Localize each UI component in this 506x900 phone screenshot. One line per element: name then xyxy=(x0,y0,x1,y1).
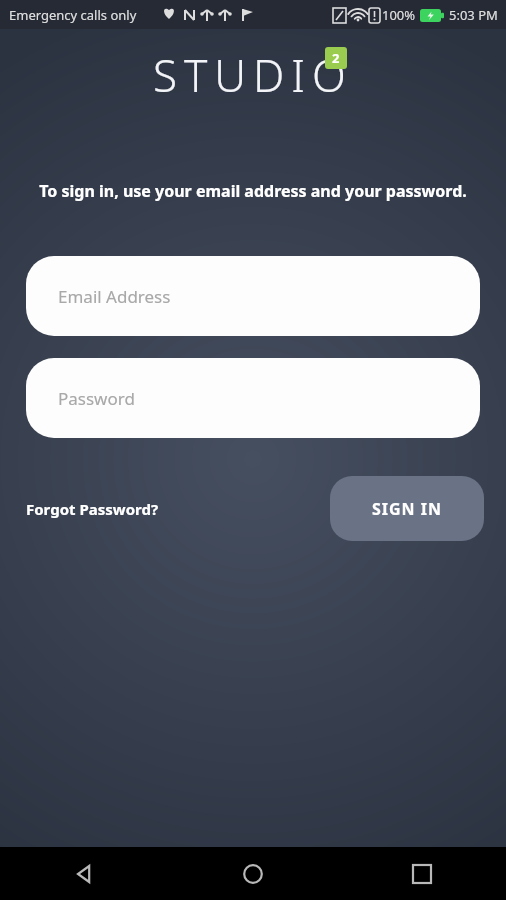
button[interactable]: SIGN IN xyxy=(330,476,484,541)
staticText: 2 xyxy=(332,49,340,67)
staticText: 5:03 PM xyxy=(449,6,498,24)
staticText: Email Address xyxy=(58,285,171,308)
button[interactable]: Recent apps xyxy=(337,847,506,900)
staticText: To sign in, use your email address and y… xyxy=(20,180,486,202)
staticText: Forgot Password? xyxy=(26,499,159,519)
button[interactable]: Email Address xyxy=(26,256,480,336)
button[interactable]: Password xyxy=(26,358,480,438)
staticText: Emergency calls only xyxy=(9,6,137,24)
button[interactable]: Home xyxy=(168,847,337,900)
staticText: SIGN IN xyxy=(372,498,443,520)
staticText: STUDIO xyxy=(153,45,353,105)
button[interactable]: Back xyxy=(0,847,168,900)
button[interactable]: Forgot Password? xyxy=(22,493,163,525)
staticText: 100% xyxy=(382,6,416,24)
staticText: Password xyxy=(58,387,135,410)
